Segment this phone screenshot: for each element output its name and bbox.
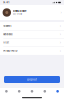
button[interactable]: Home bbox=[0, 87, 13, 95]
button[interactable]: Students bbox=[0, 22, 64, 30]
staticText: › bbox=[60, 40, 61, 45]
staticText: My Profile bbox=[13, 13, 22, 15]
staticText: › bbox=[60, 32, 61, 36]
button[interactable]: Search bbox=[13, 87, 26, 95]
button[interactable]: Add bbox=[26, 87, 38, 95]
staticText: › bbox=[60, 10, 61, 15]
staticText: Logout bbox=[27, 78, 37, 81]
staticText: Debra Rowe bbox=[13, 10, 26, 12]
staticText: Privacy Policy bbox=[3, 49, 17, 52]
button[interactable]: Privacy Policy bbox=[0, 47, 64, 55]
staticText: › bbox=[60, 24, 61, 28]
button[interactable]: Reference bbox=[0, 30, 64, 38]
button[interactable]: Alerts bbox=[38, 87, 51, 95]
button[interactable]: Debra Rowe bbox=[0, 5, 64, 20]
button[interactable]: Visit bbox=[0, 39, 64, 47]
staticText: › bbox=[60, 49, 61, 53]
staticText: Visit bbox=[3, 41, 9, 44]
staticText: 9:41 bbox=[3, 1, 9, 4]
staticText: Reference bbox=[3, 33, 12, 36]
button[interactable]: Logout bbox=[4, 76, 60, 83]
button[interactable]: Profile bbox=[51, 87, 64, 95]
staticText: Students bbox=[3, 25, 11, 27]
